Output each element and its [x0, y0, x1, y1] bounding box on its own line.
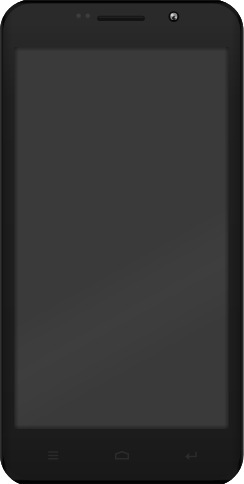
button[interactable]: Smartphone front view	[0, 0, 244, 484]
